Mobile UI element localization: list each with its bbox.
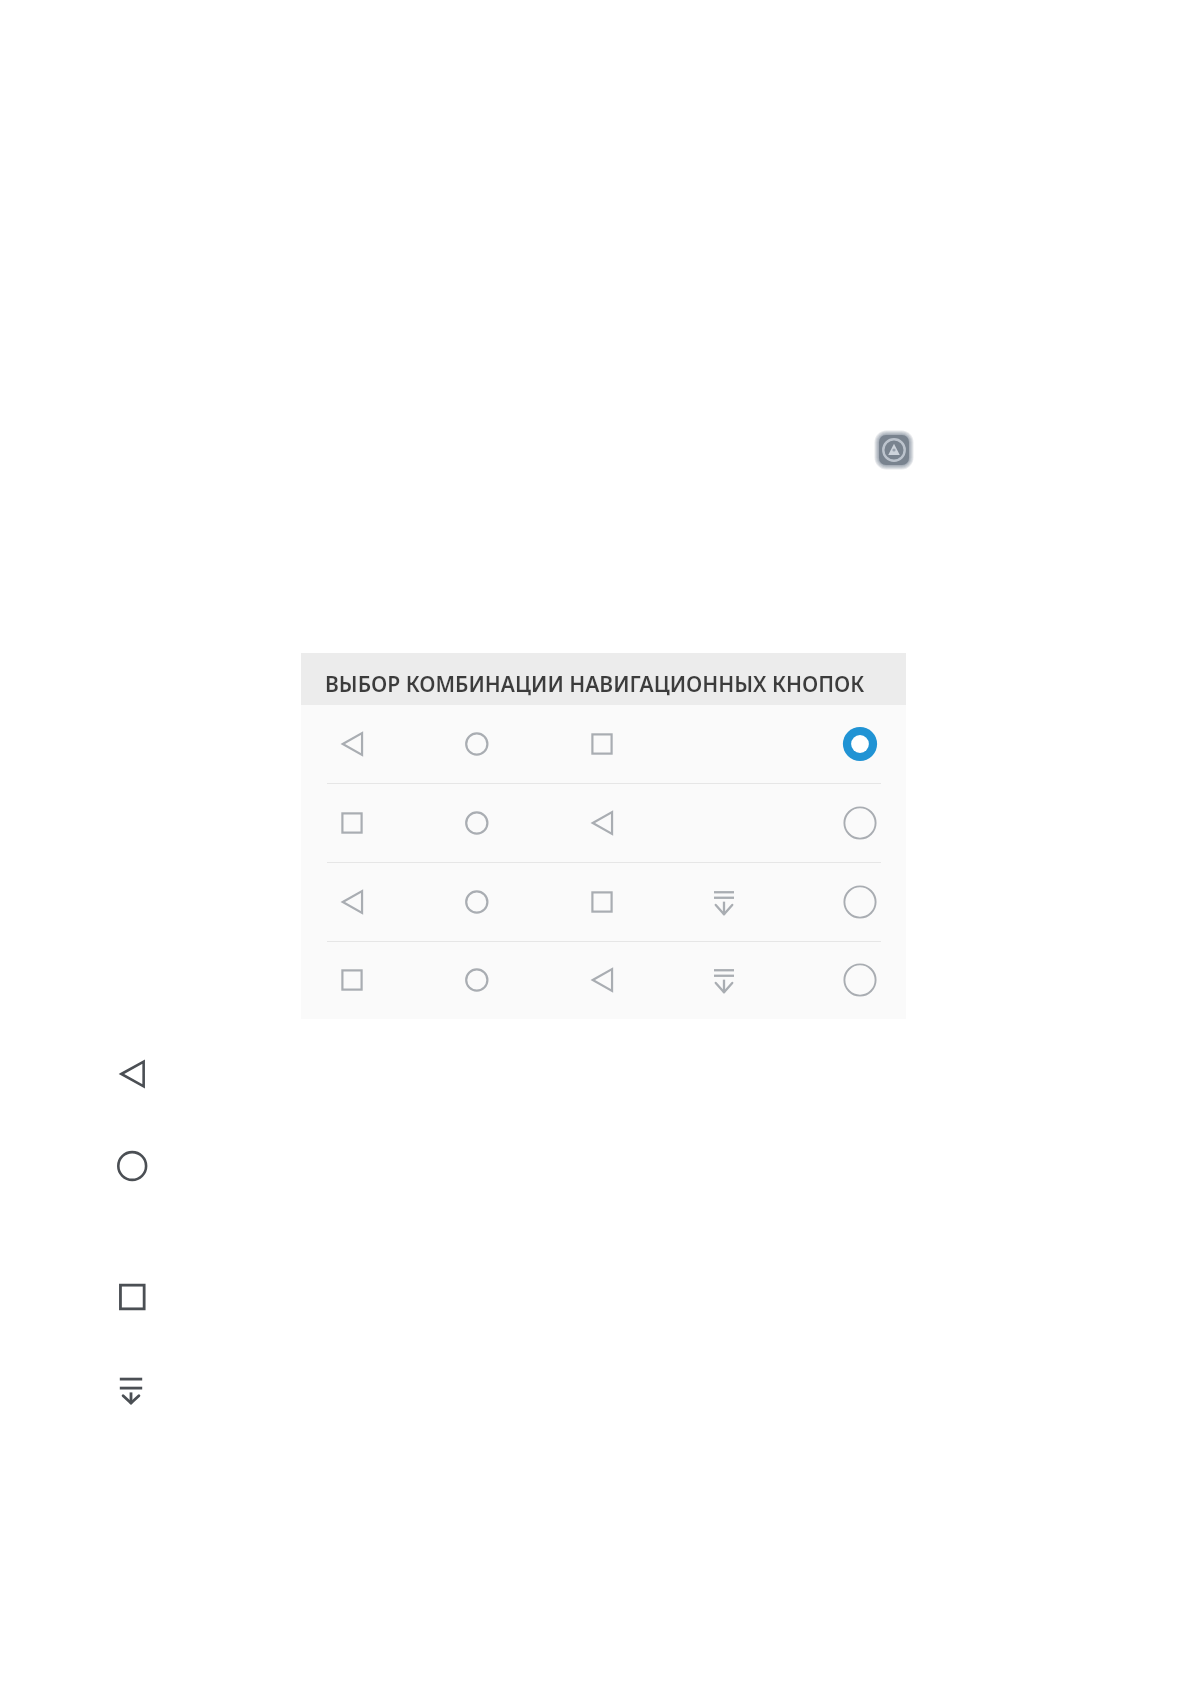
button[interactable]: Recents (107, 1273, 155, 1321)
button[interactable]: Selected navigation layout (301, 705, 906, 783)
button[interactable]: Select this navigation layout (838, 801, 882, 845)
button[interactable]: Navigation settings app icon (877, 433, 911, 467)
staticText: ВЫБОР КОМБИНАЦИИ НАВИГАЦИОННЫХ КНОПОК (325, 669, 865, 698)
button[interactable]: Select this navigation layout (301, 784, 906, 862)
button[interactable]: Select this navigation layout (301, 863, 906, 941)
button[interactable]: Select this navigation layout (838, 958, 882, 1002)
button[interactable]: Hide navigation bar (107, 1367, 155, 1415)
button[interactable]: Back (107, 1050, 155, 1098)
button[interactable]: Home (107, 1142, 155, 1190)
button[interactable]: Selected navigation layout (838, 722, 882, 766)
button[interactable]: Select this navigation layout (301, 942, 906, 1019)
button[interactable]: Select this navigation layout (838, 880, 882, 924)
